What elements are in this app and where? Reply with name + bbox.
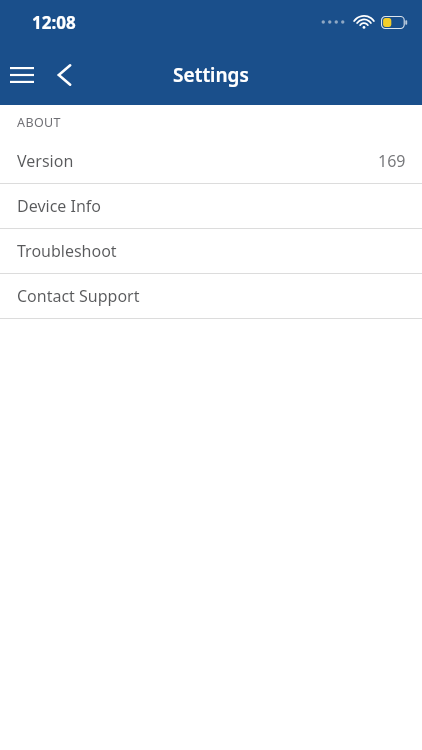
staticText: Contact Support [17, 285, 140, 307]
staticText: Version [17, 150, 74, 172]
staticText: Device Info [17, 195, 102, 217]
button[interactable]: Menu [0, 51, 44, 99]
button[interactable]: Contact Support [0, 274, 422, 318]
staticText: ABOUT [17, 114, 61, 131]
button[interactable]: Back [44, 51, 84, 99]
button[interactable]: Version [0, 139, 422, 183]
staticText: Settings [173, 62, 249, 88]
staticText: Troubleshoot [17, 240, 117, 262]
staticText: 12:08 [32, 11, 76, 34]
staticText: 169 [378, 150, 406, 172]
button[interactable]: Troubleshoot [0, 229, 422, 273]
button[interactable]: Device Info [0, 184, 422, 228]
